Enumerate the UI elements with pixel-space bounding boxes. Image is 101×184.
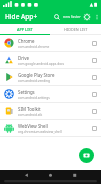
button[interactable]: WebView Shell [0,120,101,137]
staticText: Hide App+ [5,12,38,21]
button[interactable]: Select Settings [92,92,97,97]
staticText: new faster [63,14,81,19]
staticText: Chrome [18,38,35,44]
staticText: com.google.android.apps.docs [18,62,65,66]
staticText: com.android.chrome [18,45,50,49]
button[interactable]: APP LIST [0,24,50,34]
button[interactable]: Select SIM Toolkit [92,109,97,114]
staticText: org.chromium.webview_shell [18,130,62,134]
staticText: Google Play Store [18,72,55,78]
staticText: com.android.stk [18,113,43,117]
button[interactable]: Select Drive [92,58,97,63]
staticText: com.android.vending [18,79,50,83]
button[interactable]: Search [51,11,63,23]
button[interactable]: Select WebView Shell [92,126,97,131]
button[interactable]: Select Chrome [92,41,97,46]
staticText: SIM Toolkit [18,106,41,112]
button[interactable]: Hide selected apps [79,148,94,163]
button[interactable]: Drive [0,52,101,69]
staticText: HIDDEN LIST [64,27,88,32]
button[interactable]: Settings [81,11,93,23]
staticText: com.android.settings [18,96,50,100]
staticText: APP LIST [17,27,33,32]
staticText: WebView Shell [18,123,48,129]
button[interactable]: Chrome [0,35,101,52]
button[interactable]: Google Play Store [0,69,101,86]
button[interactable]: More options [93,11,101,23]
staticText: Settings [18,89,35,95]
staticText: Drive [18,55,29,61]
button[interactable]: SIM Toolkit [0,103,101,120]
button[interactable]: Settings [0,86,101,103]
button[interactable]: HIDDEN LIST [50,24,101,34]
button[interactable]: Select Google Play Store [92,75,97,80]
